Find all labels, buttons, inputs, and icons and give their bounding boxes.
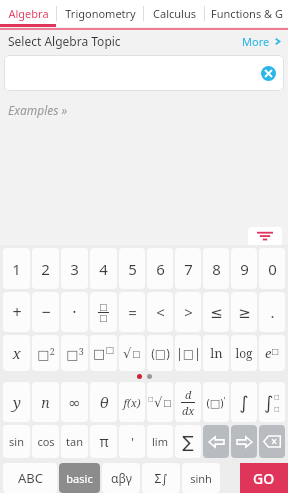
button[interactable]: 8 [203,248,229,289]
button[interactable]: . [259,292,285,332]
staticText: Algebra [8,6,49,21]
staticText: Select Algebra Topic [8,33,121,49]
button[interactable]: 3 [61,248,88,289]
button[interactable]: basic [59,463,100,493]
button[interactable]: Calculus [144,0,204,27]
button[interactable]: 4 [90,248,117,289]
staticText: sin [9,434,24,449]
staticText: Trigonometry [65,6,136,21]
button[interactable]: □2 [32,335,59,371]
button[interactable]: Backspace [259,425,285,458]
staticText: ABC [18,469,43,487]
button[interactable]: ' [119,425,145,458]
button[interactable]: tan [61,425,88,458]
button[interactable]: < [147,292,173,332]
button[interactable]: □3 [61,335,88,371]
button[interactable]: αβγ [102,463,140,493]
button[interactable]: 1 [3,248,30,289]
button[interactable]: Clear [4,55,284,91]
staticText: |□| [176,345,201,361]
staticText: 9 [240,259,249,279]
button[interactable]: Filter [248,227,282,245]
staticText: □ [132,349,141,359]
button[interactable]: ln [203,335,229,371]
button[interactable]: n [32,382,59,422]
button[interactable]: lim [147,425,173,458]
button[interactable]: sin [3,425,30,458]
staticText: − [41,301,51,323]
button[interactable]: 2 [32,248,59,289]
staticText: 0 [268,259,277,279]
button[interactable]: □ [90,292,117,332]
button[interactable]: θ [90,382,117,422]
button[interactable]: x [3,335,30,371]
button[interactable]: Examples » [8,102,68,118]
button[interactable]: ∫ [231,382,257,422]
button[interactable]: Σ∫ [142,463,180,493]
staticText: θ [99,392,109,412]
button[interactable]: Trigonometry [57,0,143,27]
button[interactable]: |□| [175,335,201,371]
staticText: ln [210,344,223,362]
button[interactable]: 6 [147,248,173,289]
button[interactable]: − [32,292,59,332]
staticText: □2 [37,345,55,362]
staticText: ∫ [264,392,274,413]
button[interactable]: f(x) [119,382,145,422]
staticText: 1 [12,259,21,279]
button[interactable]: sinh [182,463,220,493]
staticText: (□)' [206,394,226,411]
button[interactable]: + [3,292,30,332]
button[interactable]: □ [147,382,173,422]
button[interactable]: More [242,34,282,49]
button[interactable]: y [3,382,30,422]
button[interactable]: > [175,292,201,332]
staticText: □ [274,393,280,400]
button[interactable]: 7 [175,248,201,289]
button[interactable]: Move left [203,425,229,458]
button[interactable]: · [61,292,88,332]
button[interactable]: Clear [261,66,276,81]
button[interactable]: √ [119,335,145,371]
button[interactable]: GO [240,463,288,493]
staticText: ' [131,434,134,450]
staticText: d [185,387,192,402]
button[interactable]: ∑ [175,425,201,458]
staticText: > [184,302,193,322]
staticText: n [41,393,50,412]
button[interactable]: ABC [3,463,57,493]
staticText: 3 [70,259,79,279]
button[interactable]: ≤ [203,292,229,332]
staticText: ∞ [68,394,81,411]
button[interactable]: 9 [231,248,257,289]
staticText: □ [274,405,280,412]
button[interactable]: (□)' [203,382,229,422]
button[interactable]: (□) [147,335,173,371]
button[interactable]: log [231,335,257,371]
button[interactable]: Move right [231,425,257,458]
staticText: basic [66,471,93,486]
button[interactable]: 5 [119,248,145,289]
button[interactable]: ∫ [259,382,285,422]
staticText: y [13,392,21,412]
button[interactable]: cos [32,425,59,458]
staticText: = [128,302,137,322]
button[interactable]: = [119,292,145,332]
button[interactable]: e□ [259,335,285,371]
button[interactable]: Functions & G [205,0,288,27]
staticText: More [242,34,270,49]
staticText: √ [123,346,132,361]
staticText: · [72,301,77,323]
staticText: tan [66,434,83,449]
staticText: ∑ [182,432,194,452]
button[interactable]: Algebra [0,0,56,27]
staticText: 4 [99,259,108,279]
staticText: □ [99,313,108,323]
staticText: f(x) [123,395,141,410]
button[interactable]: ≥ [231,292,257,332]
button[interactable]: d [175,382,201,422]
button[interactable]: π [90,425,117,458]
button[interactable]: ∞ [61,382,88,422]
button[interactable]: □□ [90,335,117,371]
button[interactable]: 0 [259,248,285,289]
